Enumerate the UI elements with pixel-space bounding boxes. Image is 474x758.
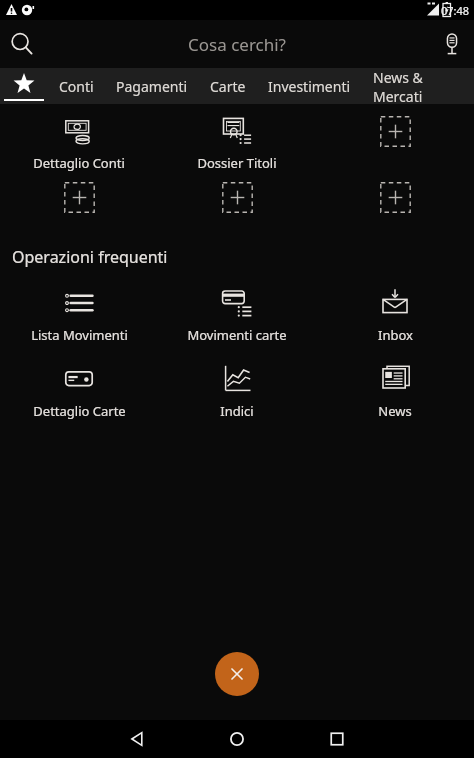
staticText: Conti: [59, 77, 94, 96]
staticText: Operazioni frequenti: [12, 246, 168, 268]
button[interactable]: Dettaglio Conti: [0, 114, 158, 172]
button[interactable]: Add shortcut: [158, 180, 316, 214]
button[interactable]: Conti: [48, 68, 105, 104]
button[interactable]: Add shortcut: [316, 114, 474, 148]
staticText: Cosa cerchi?: [188, 33, 286, 56]
button[interactable]: Favourites: [0, 68, 48, 104]
button[interactable]: Add shortcut: [316, 180, 474, 214]
staticText: Lista Movimenti: [31, 326, 128, 344]
button[interactable]: Movimenti carte: [158, 286, 316, 344]
button[interactable]: News & Mercati: [362, 68, 474, 104]
button[interactable]: Carte: [199, 68, 257, 104]
button[interactable]: Voice search: [430, 22, 474, 66]
button[interactable]: Pagamenti: [105, 68, 199, 104]
staticText: Movimenti carte: [187, 326, 287, 344]
staticText: Pagamenti: [116, 77, 188, 96]
button[interactable]: Add shortcut: [0, 180, 158, 214]
button[interactable]: Dettaglio Carte: [0, 362, 158, 420]
staticText: News & Mercati: [373, 68, 463, 104]
staticText: 07:48: [441, 3, 470, 18]
staticText: Indici: [220, 402, 254, 420]
button[interactable]: Back: [87, 720, 187, 758]
staticText: Dossier Titoli: [197, 154, 277, 172]
button[interactable]: Search: [0, 22, 44, 66]
staticText: Inbox: [378, 326, 413, 344]
button[interactable]: Home: [187, 720, 287, 758]
button[interactable]: Investimenti: [257, 68, 362, 104]
button[interactable]: Lista Movimenti: [0, 286, 158, 344]
staticText: Carte: [210, 77, 246, 96]
button[interactable]: Dossier Titoli: [158, 114, 316, 172]
button[interactable]: Close: [215, 652, 259, 696]
staticText: News: [378, 402, 412, 420]
staticText: Dettaglio Carte: [33, 402, 126, 420]
staticText: Investimenti: [268, 77, 351, 96]
button[interactable]: News: [316, 362, 474, 420]
button[interactable]: Indici: [158, 362, 316, 420]
button[interactable]: Recent apps: [287, 720, 387, 758]
staticText: Dettaglio Conti: [33, 154, 125, 172]
button[interactable]: Inbox: [316, 286, 474, 344]
